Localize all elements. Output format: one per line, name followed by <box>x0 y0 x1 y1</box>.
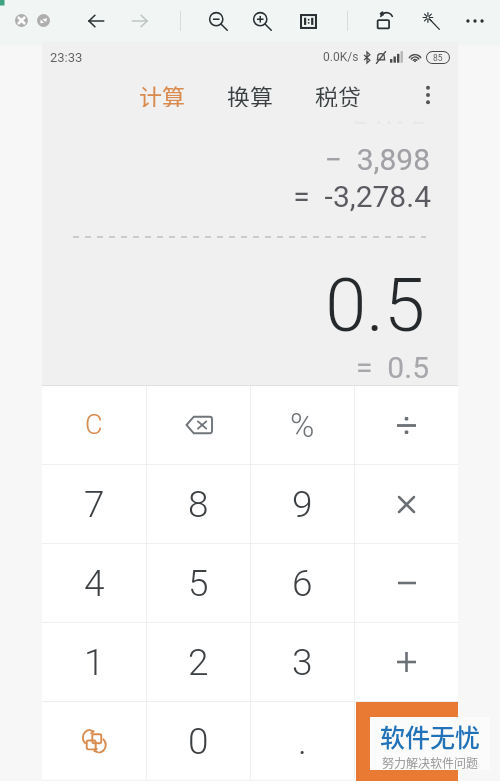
staticText: 9 <box>292 483 313 526</box>
staticText: 0.0K/s <box>323 50 359 64</box>
staticText: 税贷 <box>315 79 361 107</box>
button[interactable]: 1 <box>42 623 146 701</box>
staticText: = 0.5 <box>42 350 429 385</box>
staticText: 4 <box>84 562 105 605</box>
staticText: 7 <box>84 483 105 526</box>
button[interactable]: Close <box>15 14 28 27</box>
staticText: % <box>290 406 315 445</box>
button[interactable]: Forward <box>129 10 151 32</box>
button[interactable]: More options <box>410 77 446 113</box>
button[interactable] <box>355 544 458 622</box>
button[interactable]: 7 <box>42 465 146 543</box>
staticText: 23:33 <box>50 50 83 65</box>
staticText: 85 <box>433 53 443 63</box>
button[interactable] <box>42 702 146 780</box>
button[interactable]: Back <box>85 10 107 32</box>
button[interactable]: Zoom out <box>207 10 229 32</box>
button[interactable]: 0 <box>147 702 250 780</box>
staticText: 5 <box>188 562 209 605</box>
staticText: 努力解决软件问题 <box>382 754 479 770</box>
button[interactable]: 3 <box>251 623 354 701</box>
staticText: 换算 <box>227 79 273 107</box>
button[interactable]: . <box>251 702 354 780</box>
staticText: 6 <box>292 562 313 605</box>
staticText: − 3,898 <box>42 142 430 177</box>
button[interactable]: More <box>464 10 486 32</box>
staticText: 软件无忧 <box>380 718 481 754</box>
button[interactable]: C <box>42 386 146 464</box>
button[interactable]: Actual size <box>300 13 317 30</box>
button[interactable] <box>355 623 458 701</box>
staticText: 2 <box>188 641 209 684</box>
staticText: 0 <box>188 720 209 763</box>
staticText: = -3,278.4 <box>42 179 431 214</box>
button[interactable]: Enhance <box>420 10 442 32</box>
staticText: 0.5 <box>42 262 425 349</box>
button[interactable]: 税贷 <box>305 69 371 117</box>
button[interactable] <box>355 702 458 780</box>
button[interactable]: 换算 <box>217 69 283 117</box>
button[interactable]: Zoom in <box>251 10 273 32</box>
button[interactable]: 9 <box>251 465 354 543</box>
button[interactable]: 5 <box>147 544 250 622</box>
staticText: 计算 <box>139 79 185 107</box>
staticText: 1 <box>84 641 105 684</box>
staticText: 3 <box>292 641 313 684</box>
button[interactable]: 2 <box>147 623 250 701</box>
staticText: . <box>298 720 307 763</box>
button[interactable]: % <box>251 386 354 464</box>
staticText: C <box>85 409 103 441</box>
button[interactable]: Stop <box>37 14 50 27</box>
button[interactable] <box>355 386 458 464</box>
button[interactable] <box>355 465 458 543</box>
button[interactable]: 计算 <box>129 69 195 117</box>
staticText: 8 <box>188 483 209 526</box>
button[interactable]: 8 <box>147 465 250 543</box>
button[interactable] <box>147 386 250 464</box>
button[interactable]: 6 <box>251 544 354 622</box>
button[interactable]: 4 <box>42 544 146 622</box>
button[interactable]: Rotate <box>375 10 397 32</box>
